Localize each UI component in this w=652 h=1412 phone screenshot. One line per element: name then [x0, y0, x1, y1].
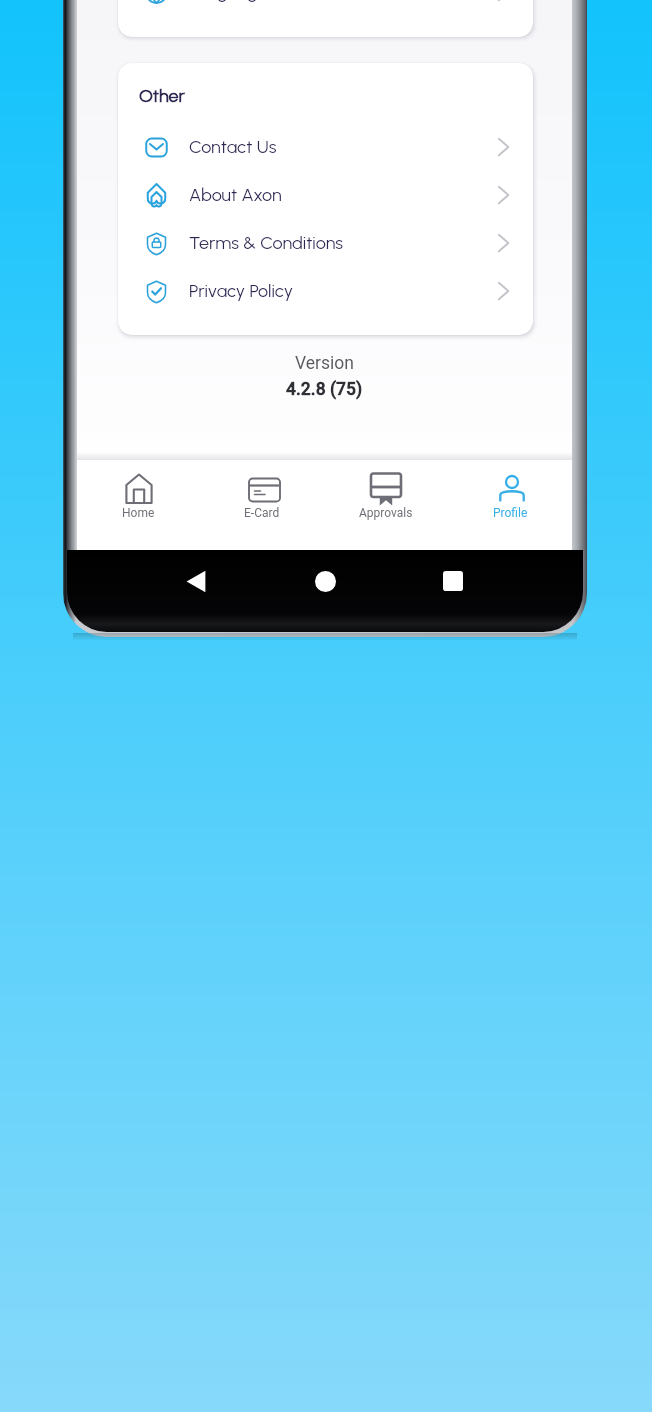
staticText: Language	[189, 0, 268, 3]
button[interactable]: Profile	[448, 460, 572, 520]
staticText: Home	[122, 506, 155, 520]
staticText: 4.2.8 (75)	[286, 379, 363, 400]
staticText: Version	[295, 353, 354, 374]
button[interactable]: Contact Us	[118, 123, 533, 171]
button[interactable]: Terms & Conditions	[118, 219, 533, 267]
button[interactable]: Privacy Policy	[118, 267, 533, 315]
button[interactable]: About Axon	[118, 171, 533, 219]
button[interactable]: Language	[118, 0, 533, 16]
staticText: Terms & Conditions	[189, 232, 344, 254]
button[interactable]: Recent apps	[443, 571, 463, 591]
button[interactable]: Back	[186, 570, 206, 593]
staticText: About Axon	[189, 184, 282, 206]
button[interactable]: E-Card	[200, 460, 324, 520]
staticText: E-Card	[244, 506, 280, 520]
staticText: Contact Us	[189, 136, 277, 158]
staticText: Other	[139, 85, 185, 107]
staticText: Profile	[493, 506, 528, 520]
staticText: Approvals	[359, 506, 413, 520]
button[interactable]: Approvals	[324, 460, 448, 520]
button[interactable]: Home	[77, 460, 200, 520]
staticText: Privacy Policy	[189, 280, 293, 302]
button[interactable]: Home	[315, 571, 336, 592]
